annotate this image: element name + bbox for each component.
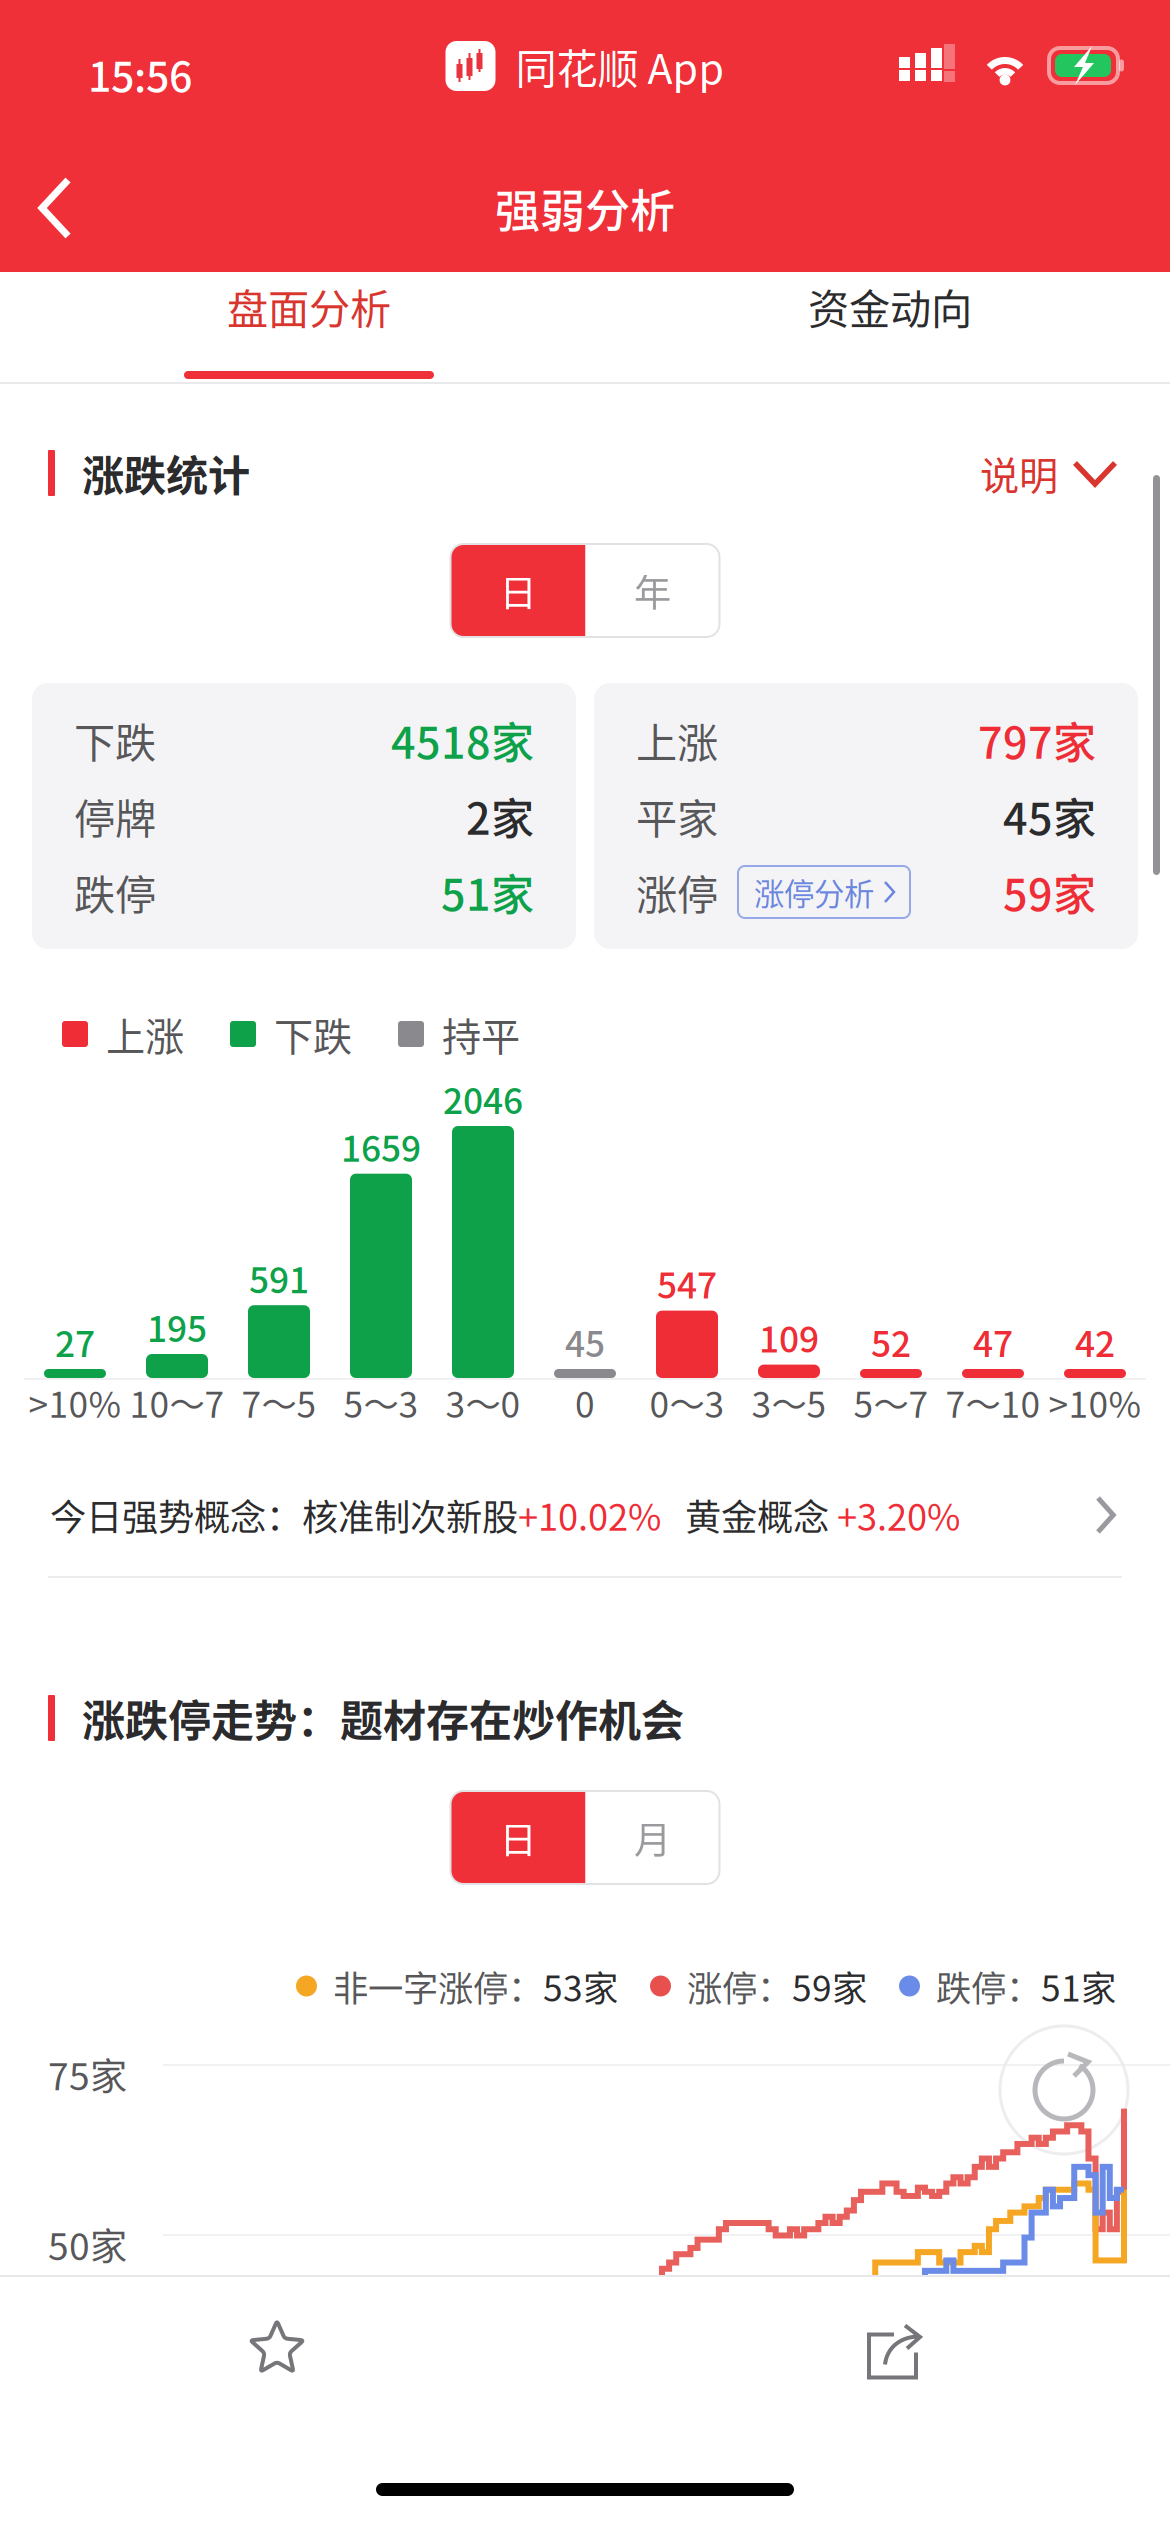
- staticText: 591: [249, 1252, 309, 1303]
- staticText: 45: [565, 1316, 605, 1367]
- staticText: 7～10: [945, 1377, 1040, 1428]
- staticText: 797家: [978, 709, 1096, 771]
- staticText: 75家: [48, 2047, 127, 2101]
- staticText: 51家: [441, 861, 534, 923]
- staticText: 涨停：: [687, 1960, 792, 2012]
- staticText: 下跌: [74, 710, 156, 770]
- button[interactable]: 今日强势概念：核准制次新股: [0, 1467, 1170, 1563]
- staticText: 持平: [442, 1006, 520, 1062]
- staticText: 0: [575, 1377, 595, 1428]
- button[interactable]: 日: [450, 544, 585, 637]
- staticText: 月: [634, 1811, 671, 1864]
- staticText: 50家: [48, 2217, 127, 2271]
- staticText: 3～0: [445, 1377, 520, 1428]
- staticText: 15:56: [88, 44, 192, 104]
- button[interactable]: Favorite: [205, 2277, 349, 2423]
- button[interactable]: 日: [450, 1791, 585, 1884]
- button[interactable]: Share: [821, 2277, 965, 2423]
- staticText: 52: [871, 1316, 911, 1367]
- staticText: >10%: [28, 1377, 121, 1428]
- button[interactable]: Back: [0, 152, 114, 264]
- staticText: +10.02%: [518, 1489, 661, 1541]
- staticText: 年: [634, 564, 671, 617]
- staticText: 涨停分析: [754, 870, 874, 914]
- staticText: 5～7: [853, 1377, 928, 1428]
- staticText: 非一字涨停：: [333, 1960, 543, 2012]
- staticText: 跌停: [74, 862, 156, 922]
- staticText: 53家: [543, 1960, 618, 2012]
- staticText: 195: [147, 1301, 207, 1352]
- button[interactable]: 月: [585, 1791, 719, 1884]
- staticText: 3～5: [751, 1377, 826, 1428]
- staticText: 0～3: [649, 1377, 724, 1428]
- staticText: 4518家: [391, 709, 534, 771]
- staticText: 同花顺 App: [515, 36, 724, 96]
- staticText: 日: [499, 564, 536, 617]
- staticText: 109: [759, 1312, 819, 1363]
- staticText: 5～3: [343, 1377, 418, 1428]
- staticText: 说明: [980, 445, 1058, 501]
- staticText: 上涨: [106, 1006, 184, 1062]
- staticText: 日: [499, 1811, 536, 1864]
- staticText: 47: [973, 1316, 1013, 1367]
- staticText: 涨跌停走势：题材存在炒作机会: [82, 1687, 684, 1749]
- staticText: 2家: [466, 785, 534, 847]
- staticText: 59家: [792, 1960, 867, 2012]
- staticText: 7～5: [241, 1377, 316, 1428]
- staticText: 27: [55, 1316, 95, 1367]
- staticText: 2046: [443, 1073, 523, 1124]
- staticText: 跌停：: [936, 1960, 1041, 2012]
- staticText: +3.20%: [837, 1489, 960, 1541]
- staticText: 下跌: [274, 1006, 352, 1062]
- staticText: 59家: [1003, 861, 1096, 923]
- staticText: 51家: [1041, 1960, 1116, 2012]
- staticText: 涨停: [636, 862, 718, 922]
- staticText: 今日强势概念：核准制次新股: [50, 1489, 518, 1541]
- button[interactable]: 资金动向: [720, 272, 1060, 382]
- staticText: 42: [1075, 1316, 1115, 1367]
- staticText: 黄金概念: [661, 1489, 837, 1541]
- staticText: 10～7: [129, 1377, 224, 1428]
- staticText: 强弱分析: [495, 175, 675, 241]
- staticText: 平家: [636, 786, 718, 846]
- button[interactable]: 涨停分析: [738, 866, 910, 918]
- button[interactable]: 说明: [980, 445, 1118, 501]
- staticText: 涨跌统计: [82, 442, 250, 503]
- button[interactable]: 年: [585, 544, 719, 637]
- staticText: 上涨: [636, 710, 718, 770]
- staticText: 547: [657, 1258, 717, 1309]
- staticText: >10%: [1048, 1377, 1141, 1428]
- staticText: 资金动向: [808, 276, 972, 336]
- staticText: 1659: [341, 1121, 421, 1172]
- button[interactable]: 盘面分析: [139, 272, 479, 382]
- staticText: 盘面分析: [227, 276, 391, 336]
- staticText: 45家: [1003, 785, 1096, 847]
- staticText: 停牌: [74, 786, 156, 846]
